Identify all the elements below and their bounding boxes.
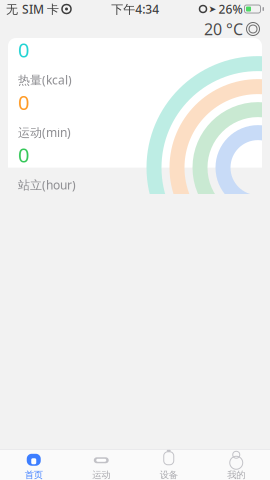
staticText: 站立(hour) xyxy=(18,177,76,193)
staticText: 我的 xyxy=(227,469,245,480)
staticText: 0 xyxy=(18,141,29,168)
button[interactable]: 设备 xyxy=(135,445,202,480)
staticText: 下午4:34 xyxy=(111,1,159,17)
staticText: 热量(kcal) xyxy=(18,72,72,88)
button[interactable]: 首页 xyxy=(0,445,67,480)
staticText: 运动 xyxy=(92,469,110,480)
staticText: 首页 xyxy=(25,469,43,480)
staticText: 0 xyxy=(18,89,29,115)
staticText: 0 xyxy=(18,36,29,63)
staticText: 无 SIM 卡 xyxy=(6,1,59,17)
button[interactable]: 我的 xyxy=(202,445,270,480)
staticText: 运动(min) xyxy=(18,124,71,140)
staticText: 26% xyxy=(218,1,242,17)
staticText: 设备 xyxy=(160,469,178,480)
staticText: 20 °C xyxy=(204,18,243,40)
staticText: ➤ xyxy=(208,4,216,14)
button[interactable]: 运动 xyxy=(67,445,135,480)
